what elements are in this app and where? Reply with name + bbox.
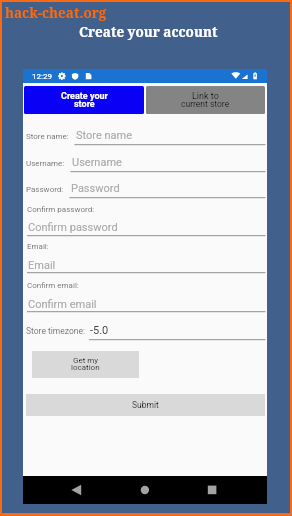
button[interactable]: Back [58,476,94,504]
staticText: hack-cheat.org [5,4,107,22]
button[interactable] [26,394,265,416]
staticText: 12:29 [32,72,52,81]
button[interactable] [32,351,139,378]
staticText: Confirm email: [27,281,79,290]
staticText: Confirm email [28,298,97,311]
staticText: Confirm password: [27,205,95,214]
staticText: Submit [132,400,159,410]
staticText: Password: [26,185,64,194]
button[interactable] [146,86,265,114]
staticText: Confirm password [28,221,118,234]
staticText: Username: [26,159,65,168]
button[interactable]: Recent apps [194,476,230,504]
button[interactable]: Home [127,476,163,504]
staticText: Create your [61,91,108,102]
staticText: current store [181,99,230,109]
staticText: Store name: [26,132,69,141]
button[interactable] [24,86,144,114]
staticText: -5.0 [90,324,109,337]
staticText: Get my [73,356,99,365]
staticText: Store name [76,129,133,142]
staticText: Email [28,259,56,272]
staticText: Email: [27,242,49,251]
staticText: Username [72,156,122,169]
staticText: Create your account [79,23,218,41]
staticText: location [71,363,100,372]
staticText: Link to [192,91,219,102]
staticText: store [74,99,95,110]
staticText: Store timezone: [26,326,86,336]
staticText: Password [71,182,120,195]
